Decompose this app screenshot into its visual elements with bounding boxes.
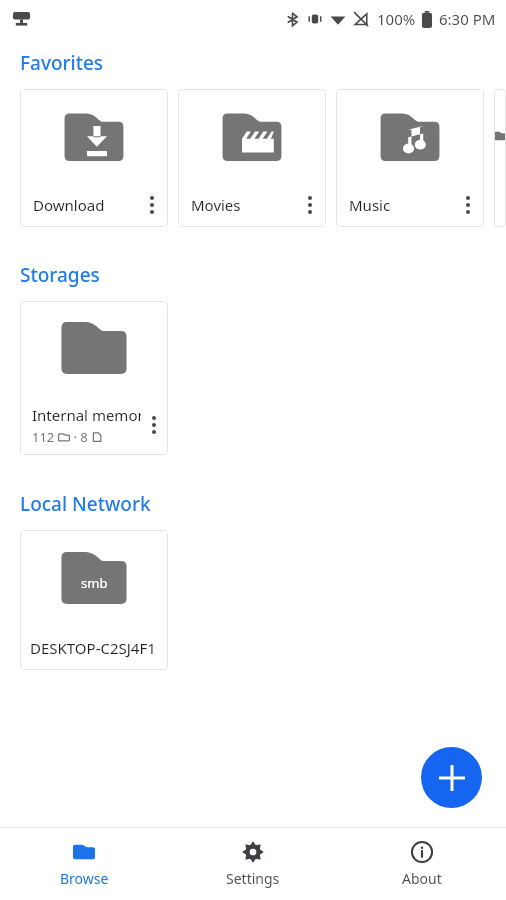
staticText: Favorites: [20, 50, 104, 76]
button[interactable]: smb: [20, 530, 168, 670]
button[interactable]: About: [337, 828, 506, 900]
staticText: Storages: [20, 262, 100, 288]
staticText: Movies: [191, 195, 297, 215]
staticText: Internal memory: [32, 405, 141, 425]
button[interactable]: Music: [336, 89, 484, 227]
staticText: About: [402, 869, 442, 888]
staticText: 100%: [377, 9, 416, 29]
button[interactable]: Browse: [0, 828, 168, 900]
staticText: Settings: [226, 869, 280, 888]
staticText: 112: [32, 428, 55, 446]
staticText: Download: [33, 195, 139, 215]
staticText: Music: [349, 195, 455, 215]
button[interactable]: More options: [141, 404, 167, 446]
button[interactable]: Internal memory: [20, 301, 168, 455]
button[interactable]: Settings: [168, 828, 337, 900]
button[interactable]: Add: [421, 747, 482, 808]
staticText: DESKTOP-C2SJ4F1: [30, 638, 156, 658]
staticText: Local Network: [20, 491, 151, 517]
staticText: Browse: [60, 869, 109, 888]
button[interactable]: Download: [20, 89, 168, 227]
button[interactable]: More options: [455, 184, 481, 226]
button[interactable]: Movies: [178, 89, 326, 227]
button[interactable]: More options: [297, 184, 323, 226]
staticText: smb: [81, 574, 108, 592]
button[interactable]: More options: [139, 184, 165, 226]
staticText: · 8: [70, 428, 88, 446]
button[interactable]: Pictures: [494, 89, 506, 227]
staticText: 6:30 PM: [439, 9, 496, 29]
